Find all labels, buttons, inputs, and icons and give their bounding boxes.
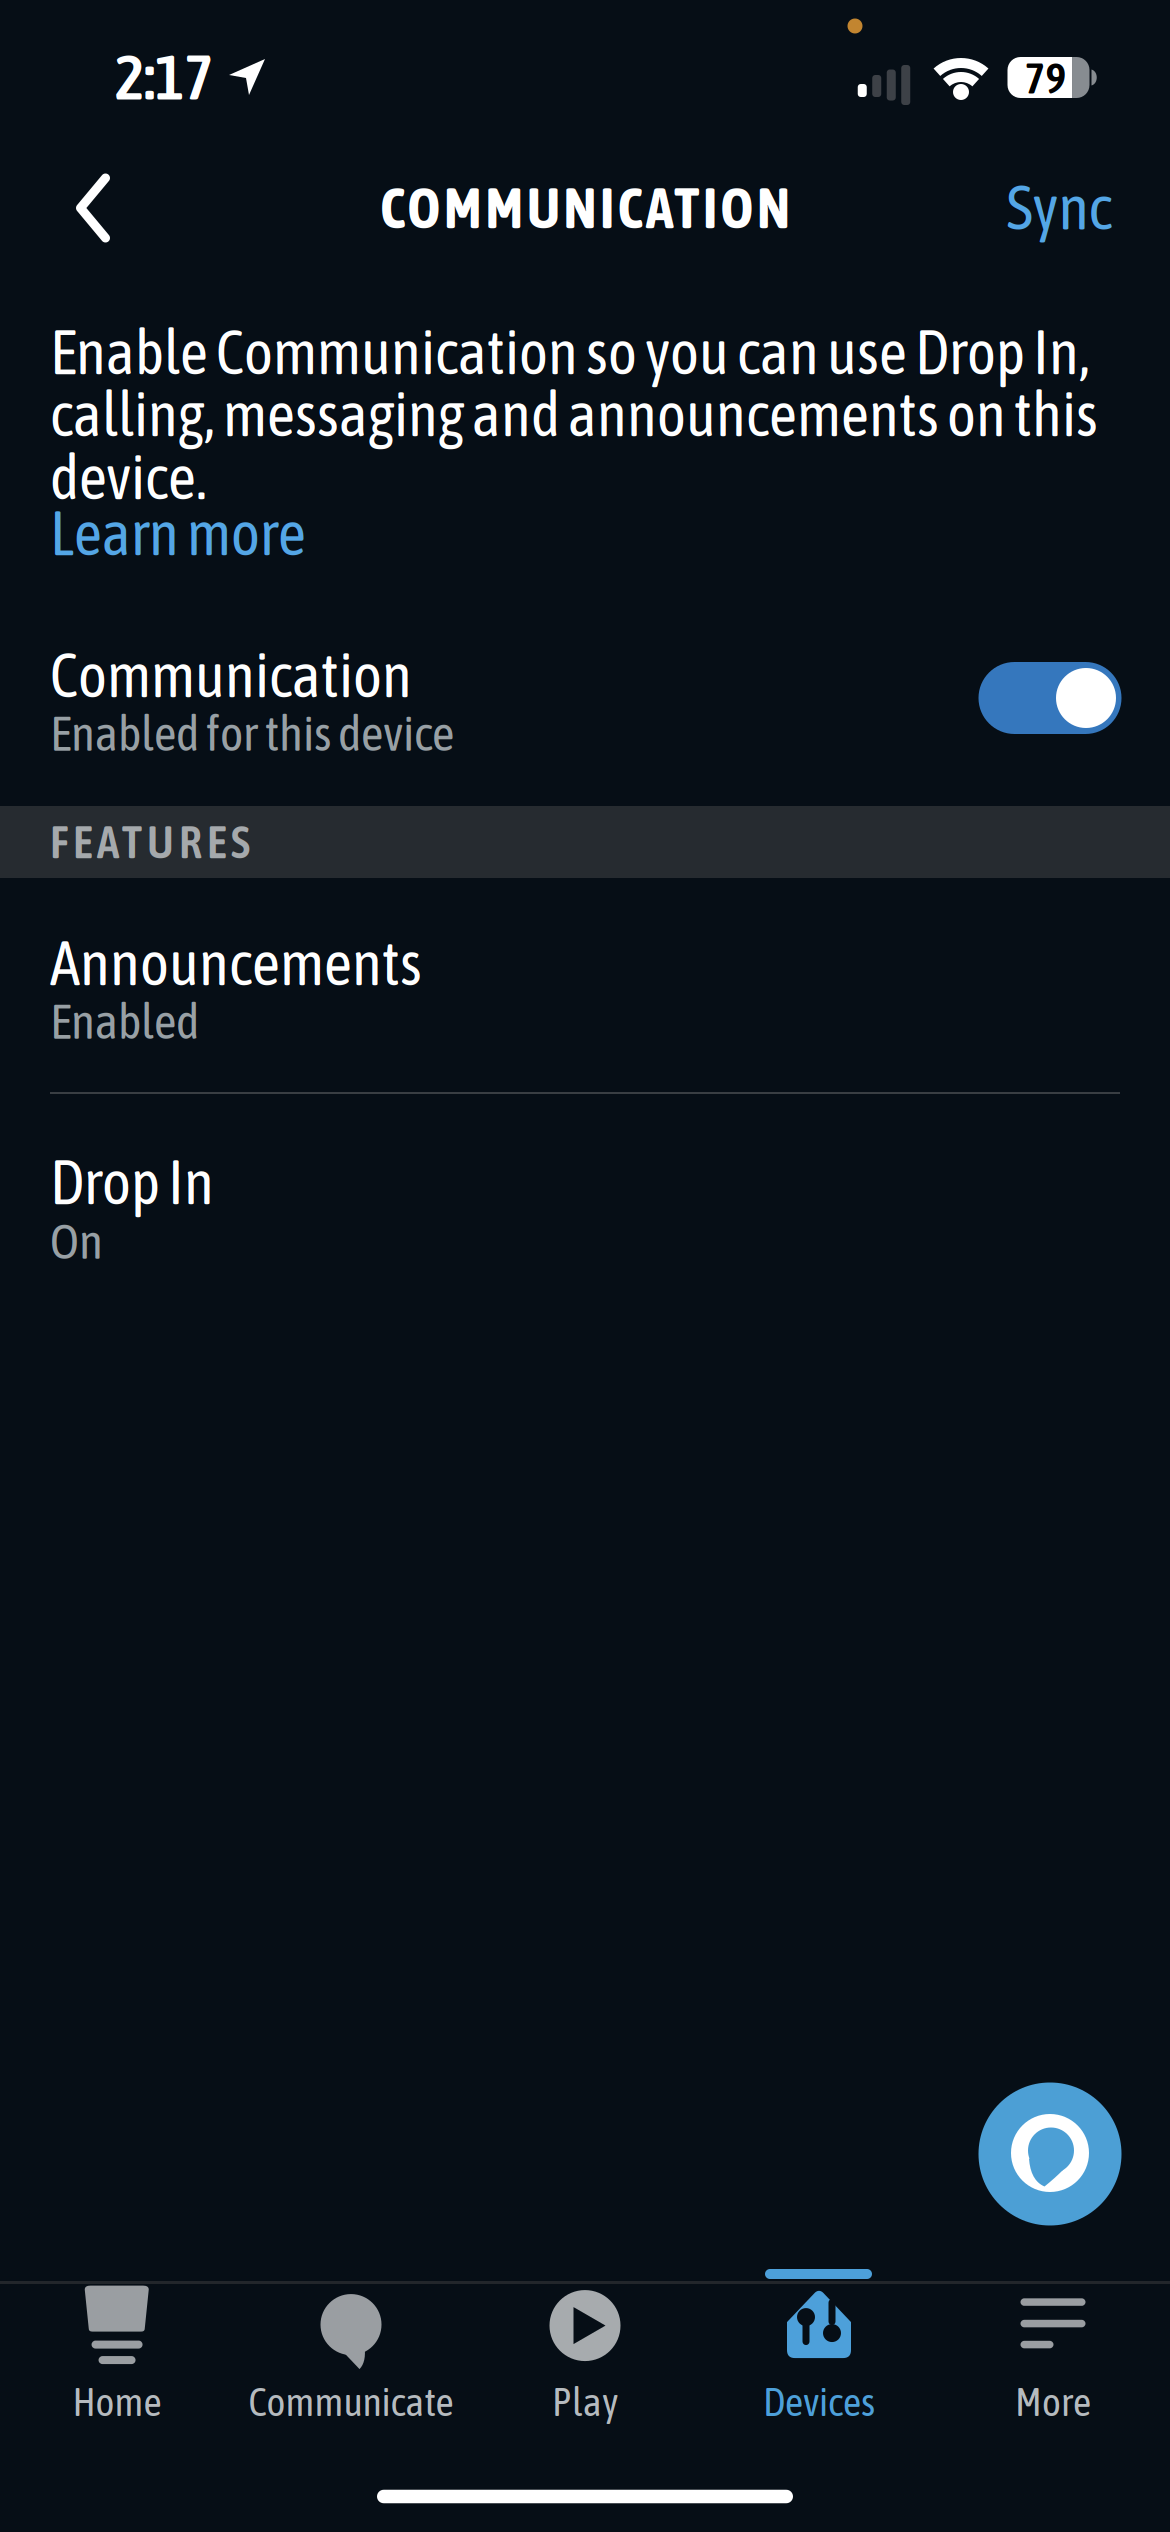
staticText: Sync <box>1006 171 1111 243</box>
staticText: Learn more <box>50 498 306 568</box>
button[interactable]: Play <box>468 2293 702 2416</box>
staticText: Communicate <box>248 2379 453 2424</box>
staticText: Enabled <box>50 993 199 1049</box>
button[interactable]: Home <box>0 2293 234 2416</box>
staticText: Play <box>552 2379 618 2424</box>
staticText: device. <box>50 442 207 512</box>
staticText: calling, messaging and announcements on … <box>50 379 1098 449</box>
button[interactable]: Sync <box>1006 171 1111 243</box>
button[interactable]: More <box>936 2293 1170 2416</box>
staticText: On <box>50 1213 103 1269</box>
staticText: More <box>1015 2379 1091 2424</box>
button[interactable]: Learn more <box>50 498 306 568</box>
staticText: Enable Communication so you can use Drop… <box>50 317 1090 387</box>
staticText: Devices <box>763 2379 875 2424</box>
staticText: 79 <box>1024 52 1066 103</box>
staticText: Drop In <box>50 1147 214 1217</box>
button[interactable]: Back <box>43 158 143 258</box>
staticText: COMMUNICATION <box>380 176 790 240</box>
button[interactable]: Announcements <box>0 878 1170 1093</box>
staticText: 2:17 <box>115 41 213 113</box>
button[interactable]: Alexa <box>978 2082 1121 2225</box>
button[interactable]: Drop In <box>0 1094 1170 1309</box>
staticText: Home <box>72 2379 161 2424</box>
button[interactable]: Devices <box>702 2293 936 2416</box>
staticText: Communication <box>50 640 412 710</box>
button[interactable]: Communicate <box>234 2293 468 2416</box>
staticText: FEATURES <box>50 816 250 868</box>
staticText: Announcements <box>50 928 422 998</box>
staticText: Enabled for this device <box>50 705 454 761</box>
button[interactable]: Communication enabled <box>978 662 1121 734</box>
